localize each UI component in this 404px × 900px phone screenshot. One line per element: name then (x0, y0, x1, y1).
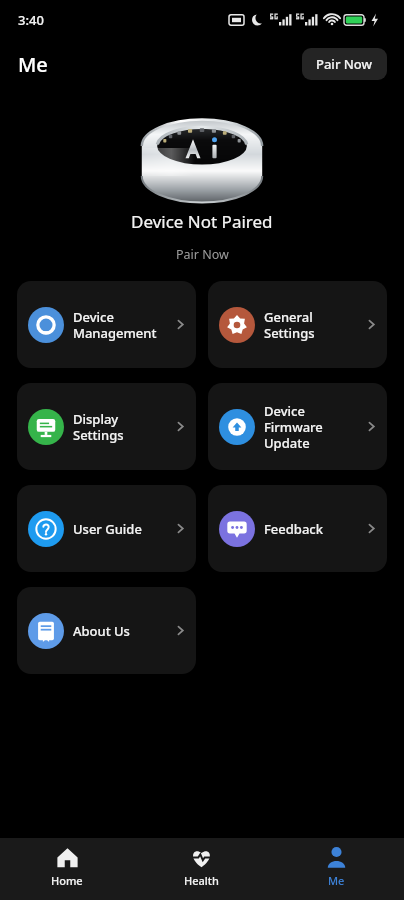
staticText: Feedback (264, 520, 362, 538)
staticText: 3:40 (18, 11, 44, 29)
button[interactable]: Me (269, 838, 404, 900)
button[interactable]: User Guide (17, 485, 196, 572)
staticText: Me (18, 51, 48, 78)
button[interactable]: Device Firmware Update (208, 383, 387, 470)
staticText: Health (184, 873, 219, 888)
staticText: Display Settings (73, 410, 171, 443)
staticText: Home (51, 873, 83, 888)
staticText: Pair Now (316, 55, 373, 73)
staticText: User Guide (73, 520, 171, 538)
staticText: Me (328, 873, 345, 888)
staticText: Pair Now (176, 246, 229, 263)
staticText: General Settings (264, 308, 362, 341)
button[interactable]: Health (134, 838, 269, 900)
button[interactable]: General Settings (208, 281, 387, 368)
button[interactable]: Home (0, 838, 134, 900)
staticText: About Us (73, 622, 171, 640)
staticText: Device Management (73, 308, 171, 341)
button[interactable]: Display Settings (17, 383, 196, 470)
button[interactable]: Pair Now (302, 48, 387, 80)
staticText: Device Firmware Update (264, 402, 362, 451)
button[interactable]: Device Management (17, 281, 196, 368)
staticText: Device Not Paired (131, 210, 273, 233)
button[interactable]: Feedback (208, 485, 387, 572)
button[interactable]: Pair Now (170, 244, 235, 265)
button[interactable]: About Us (17, 587, 196, 674)
